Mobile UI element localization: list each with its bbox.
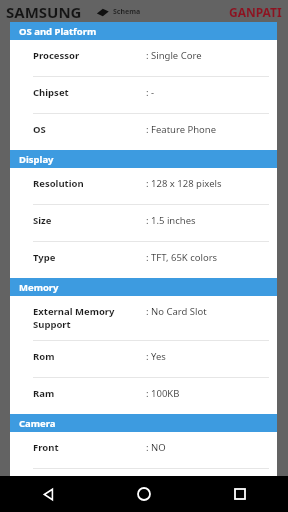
staticText: : 100KB [146, 387, 269, 400]
staticText: Display [19, 153, 54, 166]
staticText: Schema [113, 7, 141, 17]
button[interactable]: OS [10, 114, 277, 150]
staticText: : NO [146, 441, 269, 454]
button[interactable]: Rom [10, 341, 277, 377]
staticText: External Memory Support [33, 305, 146, 331]
staticText: : No Card Slot [146, 305, 269, 318]
staticText: : 1.5 inches [146, 214, 269, 227]
staticText: GANPATI [229, 4, 282, 20]
staticText: : Feature Phone [146, 123, 269, 136]
button[interactable]: Back [0, 476, 96, 512]
staticText: Rear [33, 478, 146, 491]
staticText: OS [33, 123, 146, 136]
button[interactable]: Size [10, 205, 277, 241]
staticText: : - [146, 86, 269, 99]
button[interactable]: Resolution [10, 168, 277, 204]
staticText: SAMSUNG [6, 2, 82, 22]
staticText: Resolution [33, 177, 146, 190]
button[interactable]: Front [10, 432, 277, 468]
staticText: Processor [33, 49, 146, 62]
button[interactable]: Ram [10, 378, 277, 414]
staticText: : 128 x 128 pixels [146, 177, 269, 190]
staticText: : No [146, 478, 269, 491]
button[interactable]: OS and Platform [10, 22, 277, 40]
staticText: Memory [19, 281, 59, 294]
button[interactable]: Recent apps [192, 476, 288, 512]
staticText: : Yes [146, 350, 269, 363]
staticText: Camera [19, 417, 56, 430]
staticText: Rom [33, 350, 146, 363]
button[interactable]: Processor [10, 40, 277, 76]
button[interactable]: Chipset [10, 77, 277, 113]
button[interactable]: Display [10, 150, 277, 168]
button[interactable]: Camera [10, 414, 277, 432]
staticText: : TFT, 65K colors [146, 251, 269, 264]
staticText: Chipset [33, 86, 146, 99]
button[interactable]: Memory [10, 278, 277, 296]
staticText: OS and Platform [19, 25, 97, 38]
staticText: : Single Core [146, 49, 269, 62]
button[interactable]: Rear [10, 469, 277, 505]
staticText: Type [33, 251, 146, 264]
staticText: Front [33, 441, 146, 454]
button[interactable]: Type [10, 242, 277, 278]
button[interactable]: External Memory Support [10, 296, 277, 340]
button[interactable]: Home [96, 476, 192, 512]
staticText: Ram [33, 387, 146, 400]
staticText: Size [33, 214, 146, 227]
